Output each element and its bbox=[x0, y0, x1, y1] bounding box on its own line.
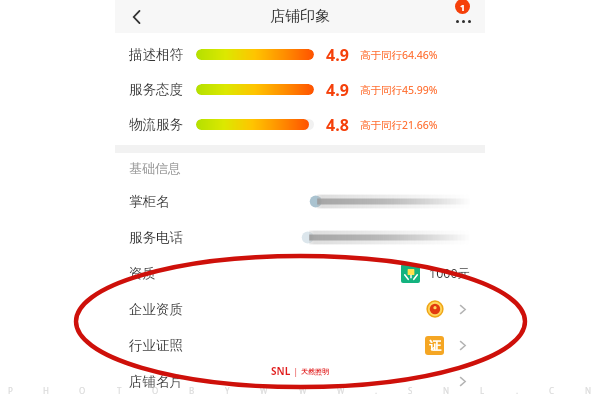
staticText: 1000元 bbox=[429, 265, 471, 282]
button[interactable]: 资质 bbox=[129, 255, 471, 291]
staticText: 行业证照 bbox=[129, 337, 183, 354]
staticText: 4.9 bbox=[326, 44, 349, 66]
button[interactable]: 行业证照 bbox=[129, 327, 471, 363]
staticText: O bbox=[152, 385, 159, 396]
staticText: | bbox=[291, 365, 299, 377]
staticText: 描述相符 bbox=[129, 46, 183, 63]
staticText: 证 bbox=[429, 338, 441, 353]
staticText: 4.9 bbox=[326, 79, 349, 101]
staticText: 天然照明 bbox=[301, 367, 329, 376]
staticText: 服务电话 bbox=[129, 229, 183, 246]
button[interactable]: More options bbox=[441, 0, 485, 33]
staticText: T bbox=[117, 385, 122, 396]
staticText: 4.8 bbox=[326, 114, 349, 136]
staticText: 资质 bbox=[129, 265, 156, 282]
button[interactable]: Back bbox=[115, 0, 159, 33]
staticText: 掌柜名 bbox=[129, 193, 170, 210]
staticText: W bbox=[260, 385, 268, 396]
button[interactable]: 掌柜名 bbox=[129, 183, 471, 219]
staticText: C bbox=[549, 385, 555, 396]
staticText: Y bbox=[225, 385, 230, 396]
staticText: L bbox=[480, 385, 485, 396]
staticText: . bbox=[375, 385, 378, 396]
staticText: W bbox=[299, 385, 307, 396]
staticText: N bbox=[585, 385, 592, 396]
staticText: H bbox=[43, 385, 49, 396]
button[interactable]: 店铺名片 bbox=[129, 363, 471, 399]
staticText: 1 bbox=[460, 1, 466, 13]
staticText: 物流服务 bbox=[129, 116, 183, 133]
staticText: 基础信息 bbox=[129, 160, 181, 176]
staticText: 高于同行21.66% bbox=[360, 118, 438, 132]
staticText: P bbox=[8, 385, 13, 396]
staticText: S bbox=[408, 385, 413, 396]
staticText: . bbox=[516, 385, 519, 396]
staticText: SNL bbox=[271, 364, 291, 378]
staticText: 服务态度 bbox=[129, 81, 183, 98]
staticText: O bbox=[79, 385, 86, 396]
staticText: 高于同行45.99% bbox=[360, 83, 438, 97]
staticText: B bbox=[189, 385, 195, 396]
staticText: 高于同行64.46% bbox=[360, 48, 438, 62]
button[interactable]: 服务电话 bbox=[129, 219, 471, 255]
button[interactable]: 企业资质 bbox=[129, 291, 471, 327]
staticText: 店铺名片 bbox=[129, 373, 183, 390]
staticText: 店铺印象 bbox=[270, 7, 330, 26]
staticText: 企业资质 bbox=[129, 301, 183, 318]
staticText: W bbox=[337, 385, 345, 396]
staticText: N bbox=[443, 385, 450, 396]
